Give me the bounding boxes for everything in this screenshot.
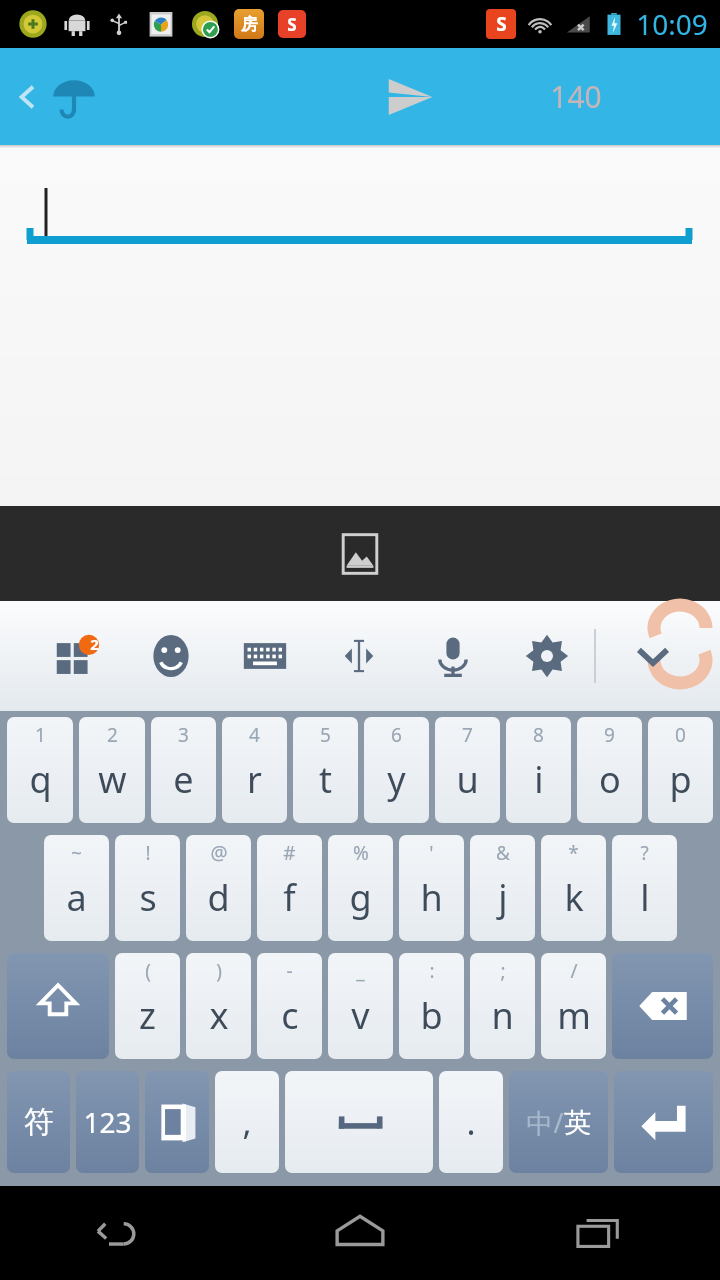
button[interactable]: ): [186, 953, 251, 1059]
staticText: 5: [320, 722, 331, 748]
button[interactable]: ~: [44, 835, 109, 941]
button[interactable]: 3: [151, 717, 216, 823]
button[interactable]: Shift: [7, 953, 109, 1059]
button[interactable]: _: [328, 953, 393, 1059]
staticText: d: [207, 873, 230, 922]
button[interactable]: Apps: [30, 601, 124, 711]
staticText: k: [564, 873, 584, 922]
staticText: a: [66, 873, 87, 922]
staticText: (: [145, 958, 151, 984]
button[interactable]: 8: [506, 717, 571, 823]
staticText: 140: [550, 76, 602, 117]
button[interactable]: Keyboard layout: [218, 601, 312, 711]
button[interactable]: Back: [0, 1186, 240, 1280]
button[interactable]: :: [399, 953, 464, 1059]
button[interactable]: ?: [612, 835, 677, 941]
button[interactable]: 中/: [509, 1071, 608, 1173]
button[interactable]: 2: [79, 717, 145, 823]
staticText: 7: [462, 722, 473, 748]
button[interactable]: Move cursor: [312, 601, 406, 711]
staticText: &: [496, 840, 510, 866]
button[interactable]: Home: [240, 1186, 480, 1280]
staticText: 3: [178, 722, 189, 748]
button[interactable]: ;: [470, 953, 535, 1059]
button[interactable]: %: [328, 835, 393, 941]
staticText: c: [281, 991, 299, 1040]
button[interactable]: Add image: [329, 523, 391, 585]
button[interactable]: Hide keyboard: [596, 601, 710, 711]
staticText: 中/: [526, 1104, 564, 1141]
button[interactable]: 7: [435, 717, 500, 823]
button[interactable]: .: [439, 1071, 503, 1173]
button[interactable]: 5: [293, 717, 358, 823]
staticText: S: [287, 13, 297, 36]
button[interactable]: Space: [285, 1071, 433, 1173]
button[interactable]: 符: [7, 1071, 70, 1173]
button[interactable]: Emoji: [124, 601, 218, 711]
staticText: e: [173, 755, 194, 804]
staticText: _: [356, 958, 365, 984]
staticText: 英: [564, 1106, 591, 1140]
staticText: w: [98, 755, 127, 804]
staticText: :: [429, 958, 435, 984]
staticText: ;: [500, 958, 506, 984]
staticText: 1: [35, 722, 46, 748]
button[interactable]: &: [470, 835, 535, 941]
staticText: .: [466, 1099, 476, 1145]
staticText: 123: [83, 1103, 132, 1141]
staticText: m: [557, 991, 591, 1040]
staticText: y: [387, 755, 406, 804]
staticText: ,: [242, 1099, 252, 1145]
button[interactable]: 9: [577, 717, 642, 823]
staticText: 9: [604, 722, 615, 748]
staticText: 4: [249, 722, 260, 748]
button[interactable]: -: [257, 953, 322, 1059]
button[interactable]: ,: [215, 1071, 279, 1173]
button[interactable]: ': [399, 835, 464, 941]
staticText: b: [420, 991, 443, 1040]
button[interactable]: [0, 148, 720, 506]
staticText: ?: [640, 840, 649, 866]
staticText: n: [491, 991, 514, 1040]
staticText: l: [640, 873, 650, 922]
staticText: v: [351, 991, 370, 1040]
button[interactable]: Backspace: [612, 953, 713, 1059]
staticText: s: [139, 873, 157, 922]
button[interactable]: Enter: [614, 1071, 713, 1173]
staticText: 8: [533, 722, 544, 748]
staticText: t: [319, 755, 332, 804]
staticText: 2: [90, 634, 99, 654]
button[interactable]: *: [541, 835, 606, 941]
staticText: ~: [71, 840, 82, 866]
staticText: i: [534, 755, 544, 804]
button[interactable]: #: [257, 835, 322, 941]
button[interactable]: Back: [4, 65, 108, 129]
staticText: o: [599, 755, 621, 804]
staticText: h: [420, 873, 443, 922]
staticText: #: [283, 840, 296, 866]
button[interactable]: Dictionary: [145, 1071, 209, 1173]
button[interactable]: !: [115, 835, 180, 941]
staticText: !: [145, 840, 151, 866]
button[interactable]: Send: [370, 57, 450, 137]
staticText: 符: [24, 1103, 54, 1141]
button[interactable]: Settings: [500, 601, 594, 711]
button[interactable]: Recent apps: [480, 1186, 720, 1280]
button[interactable]: 0: [648, 717, 713, 823]
staticText: j: [498, 873, 508, 922]
button[interactable]: 123: [76, 1071, 139, 1173]
button[interactable]: 4: [222, 717, 287, 823]
staticText: p: [669, 755, 692, 804]
button[interactable]: 1: [7, 717, 73, 823]
staticText: 房: [241, 14, 258, 35]
button[interactable]: @: [186, 835, 251, 941]
staticText: 6: [391, 722, 402, 748]
button[interactable]: /: [541, 953, 606, 1059]
button[interactable]: (: [115, 953, 180, 1059]
staticText: 2: [107, 722, 118, 748]
staticText: z: [139, 991, 156, 1040]
button[interactable]: Voice input: [406, 601, 500, 711]
staticText: r: [247, 755, 262, 804]
staticText: g: [349, 873, 372, 922]
button[interactable]: 6: [364, 717, 429, 823]
